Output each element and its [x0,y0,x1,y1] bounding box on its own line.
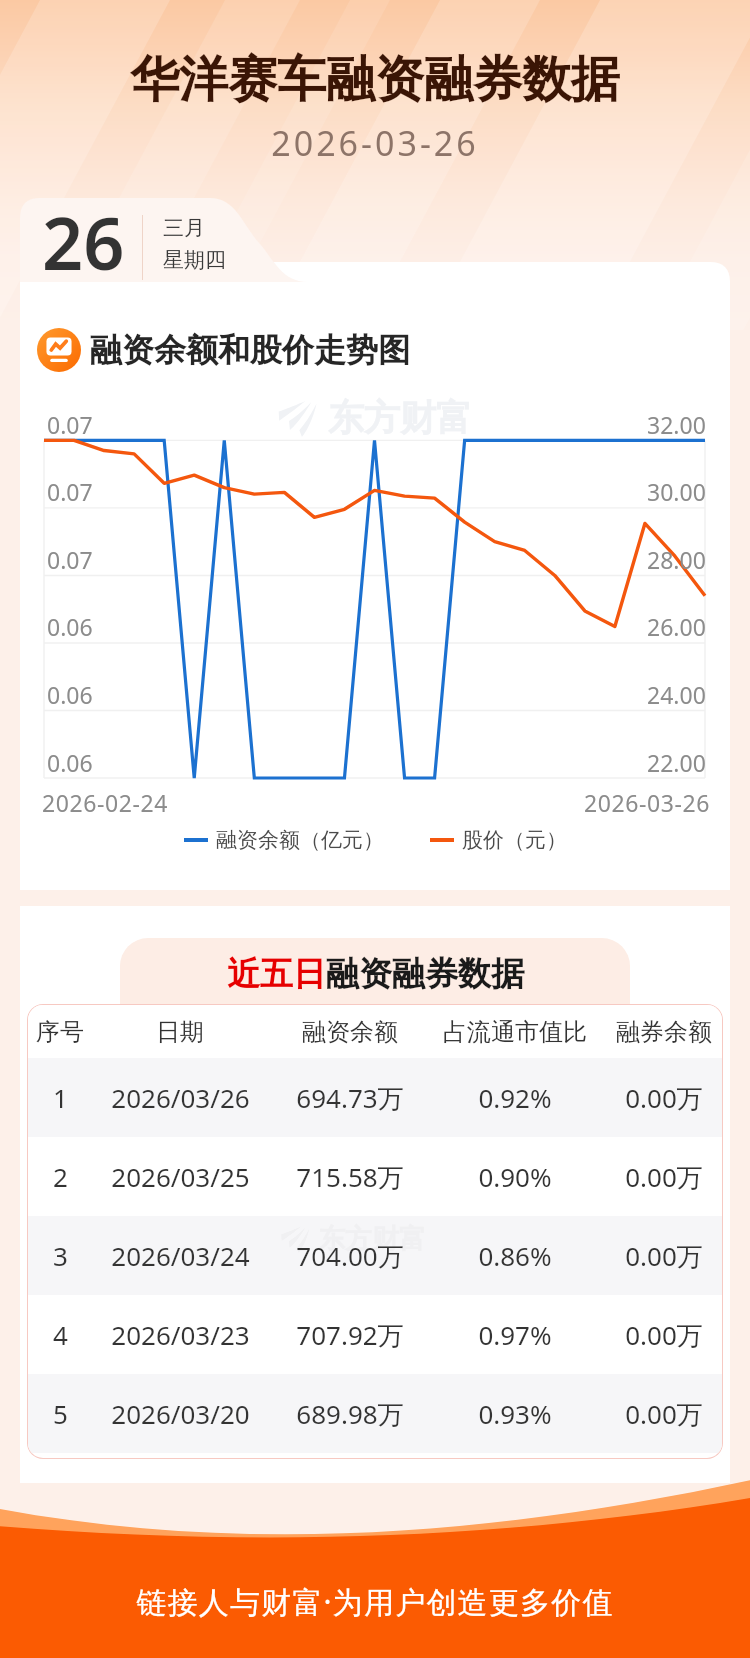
staticText: 华洋赛车融资融券数据 [0,49,750,111]
staticText: 东方财富 [328,395,472,440]
staticText: 0.00万 [625,1238,703,1274]
staticText: 30.00 [647,476,706,507]
staticText: 2026/03/26 [111,1080,250,1115]
staticText: 0.06 [47,679,93,710]
staticText: 序号 [36,1017,84,1047]
staticText: 694.73万 [296,1080,404,1116]
staticText: 2026-03-26 [584,787,711,818]
staticText: 0.90% [478,1159,552,1194]
staticText: 689.98万 [296,1396,404,1432]
staticText: 32.00 [647,409,706,440]
staticText: 融券余额 [616,1017,712,1047]
staticText: 日期 [156,1017,204,1047]
staticText: 5 [53,1396,68,1431]
staticText: 0.07 [47,409,93,440]
staticText: 星期四 [163,247,226,273]
staticText: 股价（元） [462,827,567,853]
staticText: 0.07 [47,476,93,507]
staticText: 近五日融资融券数据 [227,953,524,995]
staticText: 715.58万 [296,1159,404,1195]
staticText: 融资余额（亿元） [216,827,384,853]
staticText: 2026/03/25 [111,1159,250,1194]
button[interactable]: 5 [28,1374,722,1453]
staticText: 0.00万 [625,1396,703,1432]
staticText: 0.00万 [625,1159,703,1195]
button[interactable]: 1 [28,1058,722,1137]
staticText: 融资余额 [302,1017,398,1047]
staticText: 0.00万 [625,1317,703,1353]
staticText: 707.92万 [296,1317,404,1353]
staticText: 4 [53,1317,68,1352]
staticText: 0.00万 [625,1080,703,1116]
staticText: 2026/03/24 [111,1238,250,1273]
staticText: 2026-03-26 [0,120,750,166]
staticText: 2026/03/20 [111,1396,250,1431]
staticText: 链接人与财富·为用户创造更多价值 [0,1581,750,1622]
button[interactable]: 2 [28,1137,722,1216]
staticText: 26.00 [647,611,706,642]
staticText: 1 [53,1080,68,1115]
staticText: 0.93% [478,1396,552,1431]
staticText: 0.06 [47,611,93,642]
staticText: 24.00 [647,679,706,710]
staticText: 融资余额和股价走势图 [90,330,410,370]
staticText: 0.97% [478,1317,552,1352]
staticText: 0.86% [478,1238,552,1273]
staticText: 28.00 [647,544,706,575]
staticText: 22.00 [647,747,706,778]
staticText: 2 [53,1159,68,1194]
button[interactable]: 4 [28,1295,722,1374]
staticText: 2026/03/23 [111,1317,250,1352]
staticText: 0.92% [478,1080,552,1115]
staticText: 0.07 [47,544,93,575]
staticText: 三月 [163,215,205,241]
staticText: 2026-02-24 [42,787,169,818]
button[interactable]: 东方财富 [28,1216,722,1295]
staticText: 3 [53,1238,68,1273]
staticText: 26 [42,193,125,291]
staticText: 0.06 [47,747,93,778]
staticText: 占流通市值比 [443,1017,587,1047]
other: Chart [37,328,81,372]
staticText: 东方财富 [318,1222,426,1256]
staticText: 704.00万 [296,1238,404,1274]
